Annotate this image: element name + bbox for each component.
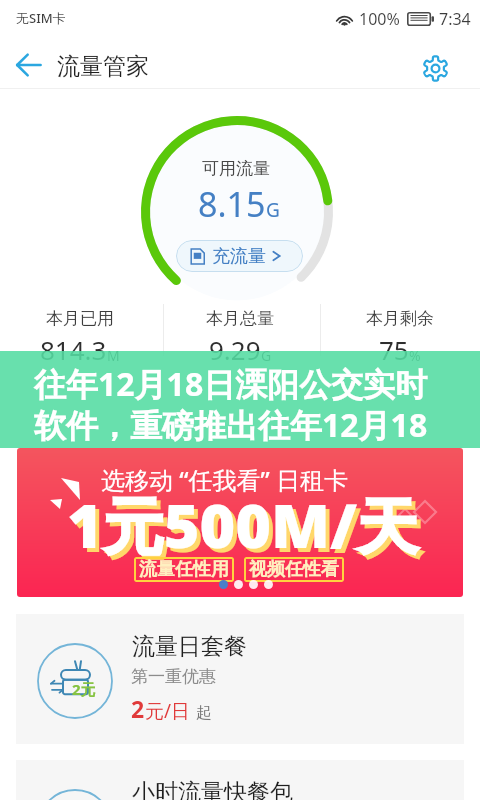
staticText: G — [266, 197, 280, 223]
staticText: 1元500M/天 — [67, 483, 418, 566]
staticText: 视频任性看 — [249, 558, 339, 581]
staticText: 8.15 — [198, 181, 266, 227]
button[interactable]: Back — [6, 50, 50, 80]
staticText: 2 — [131, 693, 145, 724]
staticText: 软件，重磅推出往年12月18 — [34, 403, 428, 447]
staticText: 2元 — [72, 679, 96, 699]
staticText: 本月已用 — [46, 308, 114, 329]
staticText: G — [261, 346, 272, 365]
staticText: 流量日套餐 — [132, 632, 247, 661]
button[interactable]: 充流量 — [176, 240, 303, 272]
staticText: M — [107, 346, 120, 365]
staticText: 75 — [379, 332, 409, 367]
button[interactable]: 选移动 “任我看” 日租卡 — [17, 448, 463, 597]
staticText: 流量管家 — [57, 52, 149, 81]
button[interactable]: 2元 — [16, 614, 464, 744]
staticText: 起 — [196, 703, 212, 723]
staticText: 本月总量 — [206, 308, 274, 329]
staticText: 流量任性用 — [139, 558, 229, 581]
staticText: 7:34 — [439, 8, 471, 30]
staticText: 100% — [359, 8, 400, 30]
staticText: 第一重优惠 — [131, 666, 216, 687]
staticText: 1元500M/天 — [71, 487, 422, 570]
staticText: 本月剩余 — [366, 308, 434, 329]
staticText: % — [409, 346, 421, 365]
staticText: 可用流量 — [202, 158, 270, 179]
staticText: 814.3 — [40, 332, 107, 367]
button[interactable]: Settings — [420, 53, 451, 84]
staticText: 充流量 — [212, 245, 266, 268]
staticText: 往年12月18日溧阳公交实时 — [34, 362, 428, 406]
staticText: 元/日 — [145, 698, 191, 724]
button[interactable]: 2元 — [16, 760, 464, 800]
staticText: 9.29 — [209, 332, 261, 367]
staticText: 无SIM卡 — [16, 9, 66, 27]
staticText: 小时流量快餐包 — [132, 778, 293, 800]
staticText: 选移动 “任我看” 日租卡 — [101, 463, 348, 496]
